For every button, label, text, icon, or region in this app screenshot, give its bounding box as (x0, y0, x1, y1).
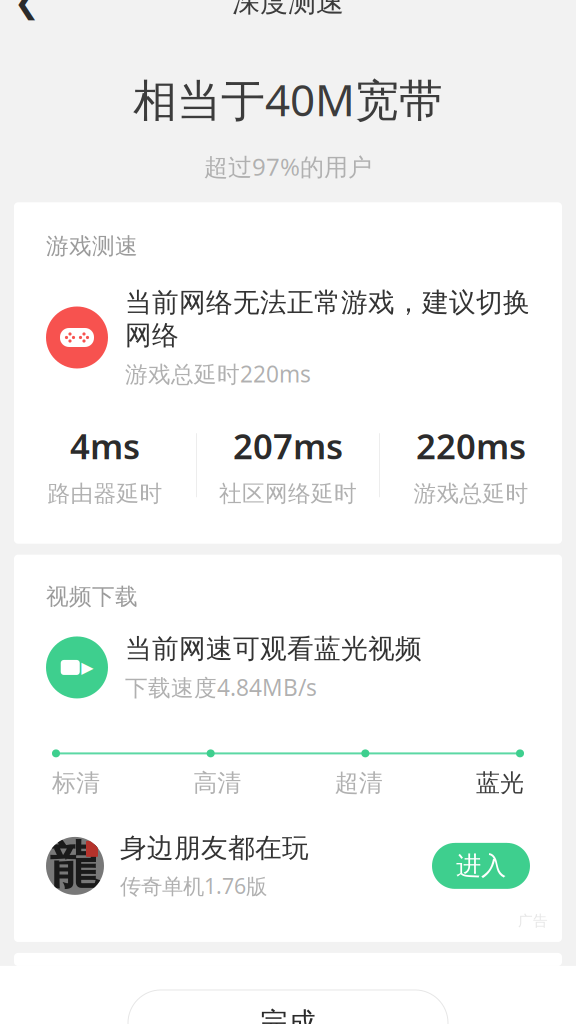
staticText: 高清 (193, 768, 241, 798)
staticText: 超过97%的用户 (204, 150, 372, 182)
staticText: 视频下载 (46, 583, 138, 610)
button[interactable]: 龍 (46, 832, 530, 900)
staticText: 超清 (335, 768, 383, 798)
staticText: 蓝光 (476, 768, 524, 798)
staticText: 相当于40M宽带 (133, 70, 443, 128)
button[interactable]: 完成 (128, 990, 448, 1024)
staticText: 身边朋友都在玩 (120, 832, 309, 865)
staticText: ❮ (14, 0, 40, 19)
staticText: ▶ (81, 658, 93, 677)
staticText: 当前网络无法正常游戏，建议切换网络 (125, 286, 530, 352)
staticText: 207ms (233, 423, 343, 469)
staticText: 游戏测速 (46, 232, 138, 260)
staticText: 广告 (518, 912, 548, 930)
staticText: 传奇单机1.76版 (120, 872, 267, 900)
staticText: 220ms (416, 423, 526, 469)
staticText: 龍 (49, 835, 100, 897)
staticText: 进入 (456, 850, 506, 881)
button[interactable]: 返回 (0, 0, 54, 27)
staticText: 4ms (70, 423, 140, 469)
staticText: 深度测速 (232, 0, 344, 19)
staticText: 下载速度4.84MB/s (125, 672, 317, 702)
staticText: 社区网络延时 (219, 480, 357, 508)
staticText: 游戏总延时 (413, 480, 528, 508)
staticText: 当前网速可观看蓝光视频 (125, 632, 422, 665)
staticText: 游戏总延时220ms (125, 359, 311, 389)
staticText: 路由器延时 (47, 480, 162, 508)
staticText: 完成 (260, 1006, 316, 1024)
staticText: 标清 (52, 768, 100, 798)
